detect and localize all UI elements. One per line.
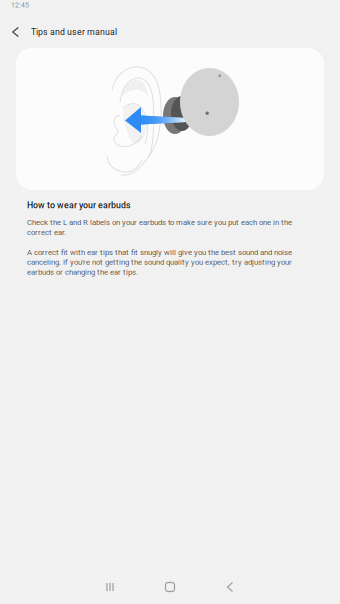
staticText: Tips and user manual <box>31 27 117 37</box>
staticText: Check the L and R labels on your earbuds… <box>27 217 292 237</box>
staticText: 12:45 <box>11 1 29 9</box>
button[interactable]: Back <box>5 18 26 46</box>
button[interactable]: Home <box>140 574 200 600</box>
staticText: A correct fit with ear tips that fit snu… <box>27 247 292 277</box>
button[interactable]: Back <box>200 574 260 600</box>
staticText: How to wear your earbuds <box>27 200 131 210</box>
button[interactable]: Recent apps <box>80 574 140 600</box>
